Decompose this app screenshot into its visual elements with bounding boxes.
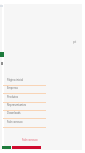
staticText: pt [73, 40, 77, 44]
button[interactable]: Empresa [3, 86, 46, 94]
button[interactable]: Produtos [3, 95, 46, 103]
staticText: Fale conosco [7, 120, 23, 124]
staticText: Produtos [7, 95, 19, 99]
button[interactable]: Fale conosco [3, 120, 46, 128]
staticText: Empresa [7, 86, 18, 90]
button[interactable]: Idioma [73, 40, 77, 44]
staticText: Representantes [7, 103, 27, 107]
staticText: Downloads [7, 111, 21, 115]
button[interactable]: Página inicial [3, 78, 46, 86]
button[interactable]: Representantes [3, 103, 46, 111]
staticText: Página inicial [7, 78, 24, 82]
staticText: Fale conosco [22, 138, 38, 142]
button[interactable]: Downloads [3, 111, 46, 119]
